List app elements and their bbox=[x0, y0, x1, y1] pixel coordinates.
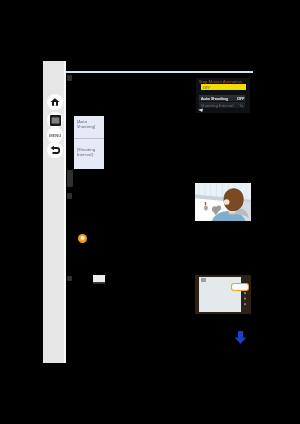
staticText: [Auto Shooting] bbox=[77, 119, 104, 129]
staticText: Auto Shooting bbox=[201, 96, 228, 101]
button[interactable]: Navigation button bbox=[47, 94, 63, 110]
button[interactable]: Navigation button bbox=[47, 142, 63, 158]
staticText: MENU bbox=[49, 133, 62, 138]
staticText: Stop Motion Animation bbox=[199, 79, 243, 84]
staticText: [Shooting Interval] bbox=[77, 147, 104, 157]
staticText: 1s bbox=[239, 103, 244, 108]
button[interactable]: Navigation button bbox=[47, 112, 63, 128]
staticText: Shooting Interval bbox=[201, 103, 234, 108]
button[interactable]: Navigation button bbox=[47, 127, 63, 143]
staticText: OFF bbox=[203, 85, 211, 90]
staticText: OFF bbox=[237, 96, 245, 101]
